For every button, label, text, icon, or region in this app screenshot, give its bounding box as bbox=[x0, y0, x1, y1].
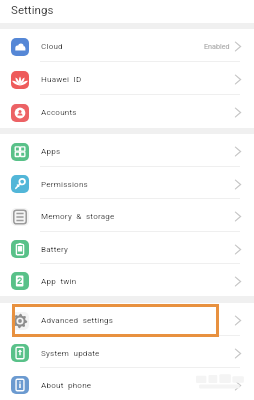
button[interactable]: Cloud bbox=[0, 29, 254, 62]
staticText: Permissions bbox=[41, 179, 88, 188]
staticText: Huawei ID bbox=[41, 74, 82, 83]
staticText: About phone bbox=[41, 380, 92, 389]
staticText: Battery bbox=[41, 244, 69, 253]
button[interactable]: Huawei ID bbox=[0, 62, 254, 95]
staticText: Cloud bbox=[41, 41, 63, 50]
staticText: System update bbox=[41, 348, 100, 357]
button[interactable]: Apps bbox=[0, 134, 254, 167]
button[interactable]: Memory & storage bbox=[0, 199, 254, 232]
staticText: Accounts bbox=[41, 107, 77, 116]
staticText: Advanced settings bbox=[41, 315, 114, 324]
staticText: Enabled bbox=[204, 42, 230, 50]
staticText: Memory & storage bbox=[41, 211, 115, 220]
button[interactable]: Advanced settings bbox=[0, 303, 254, 336]
staticText: Settings bbox=[11, 3, 54, 16]
staticText: Apps bbox=[41, 146, 61, 155]
button[interactable]: Accounts bbox=[0, 95, 254, 128]
button[interactable]: App twin bbox=[0, 264, 254, 296]
button[interactable]: Battery bbox=[0, 232, 254, 264]
button[interactable]: System update bbox=[0, 336, 254, 368]
button[interactable]: Permissions bbox=[0, 167, 254, 199]
staticText: App twin bbox=[41, 276, 77, 285]
button[interactable]: About phone bbox=[0, 368, 254, 400]
